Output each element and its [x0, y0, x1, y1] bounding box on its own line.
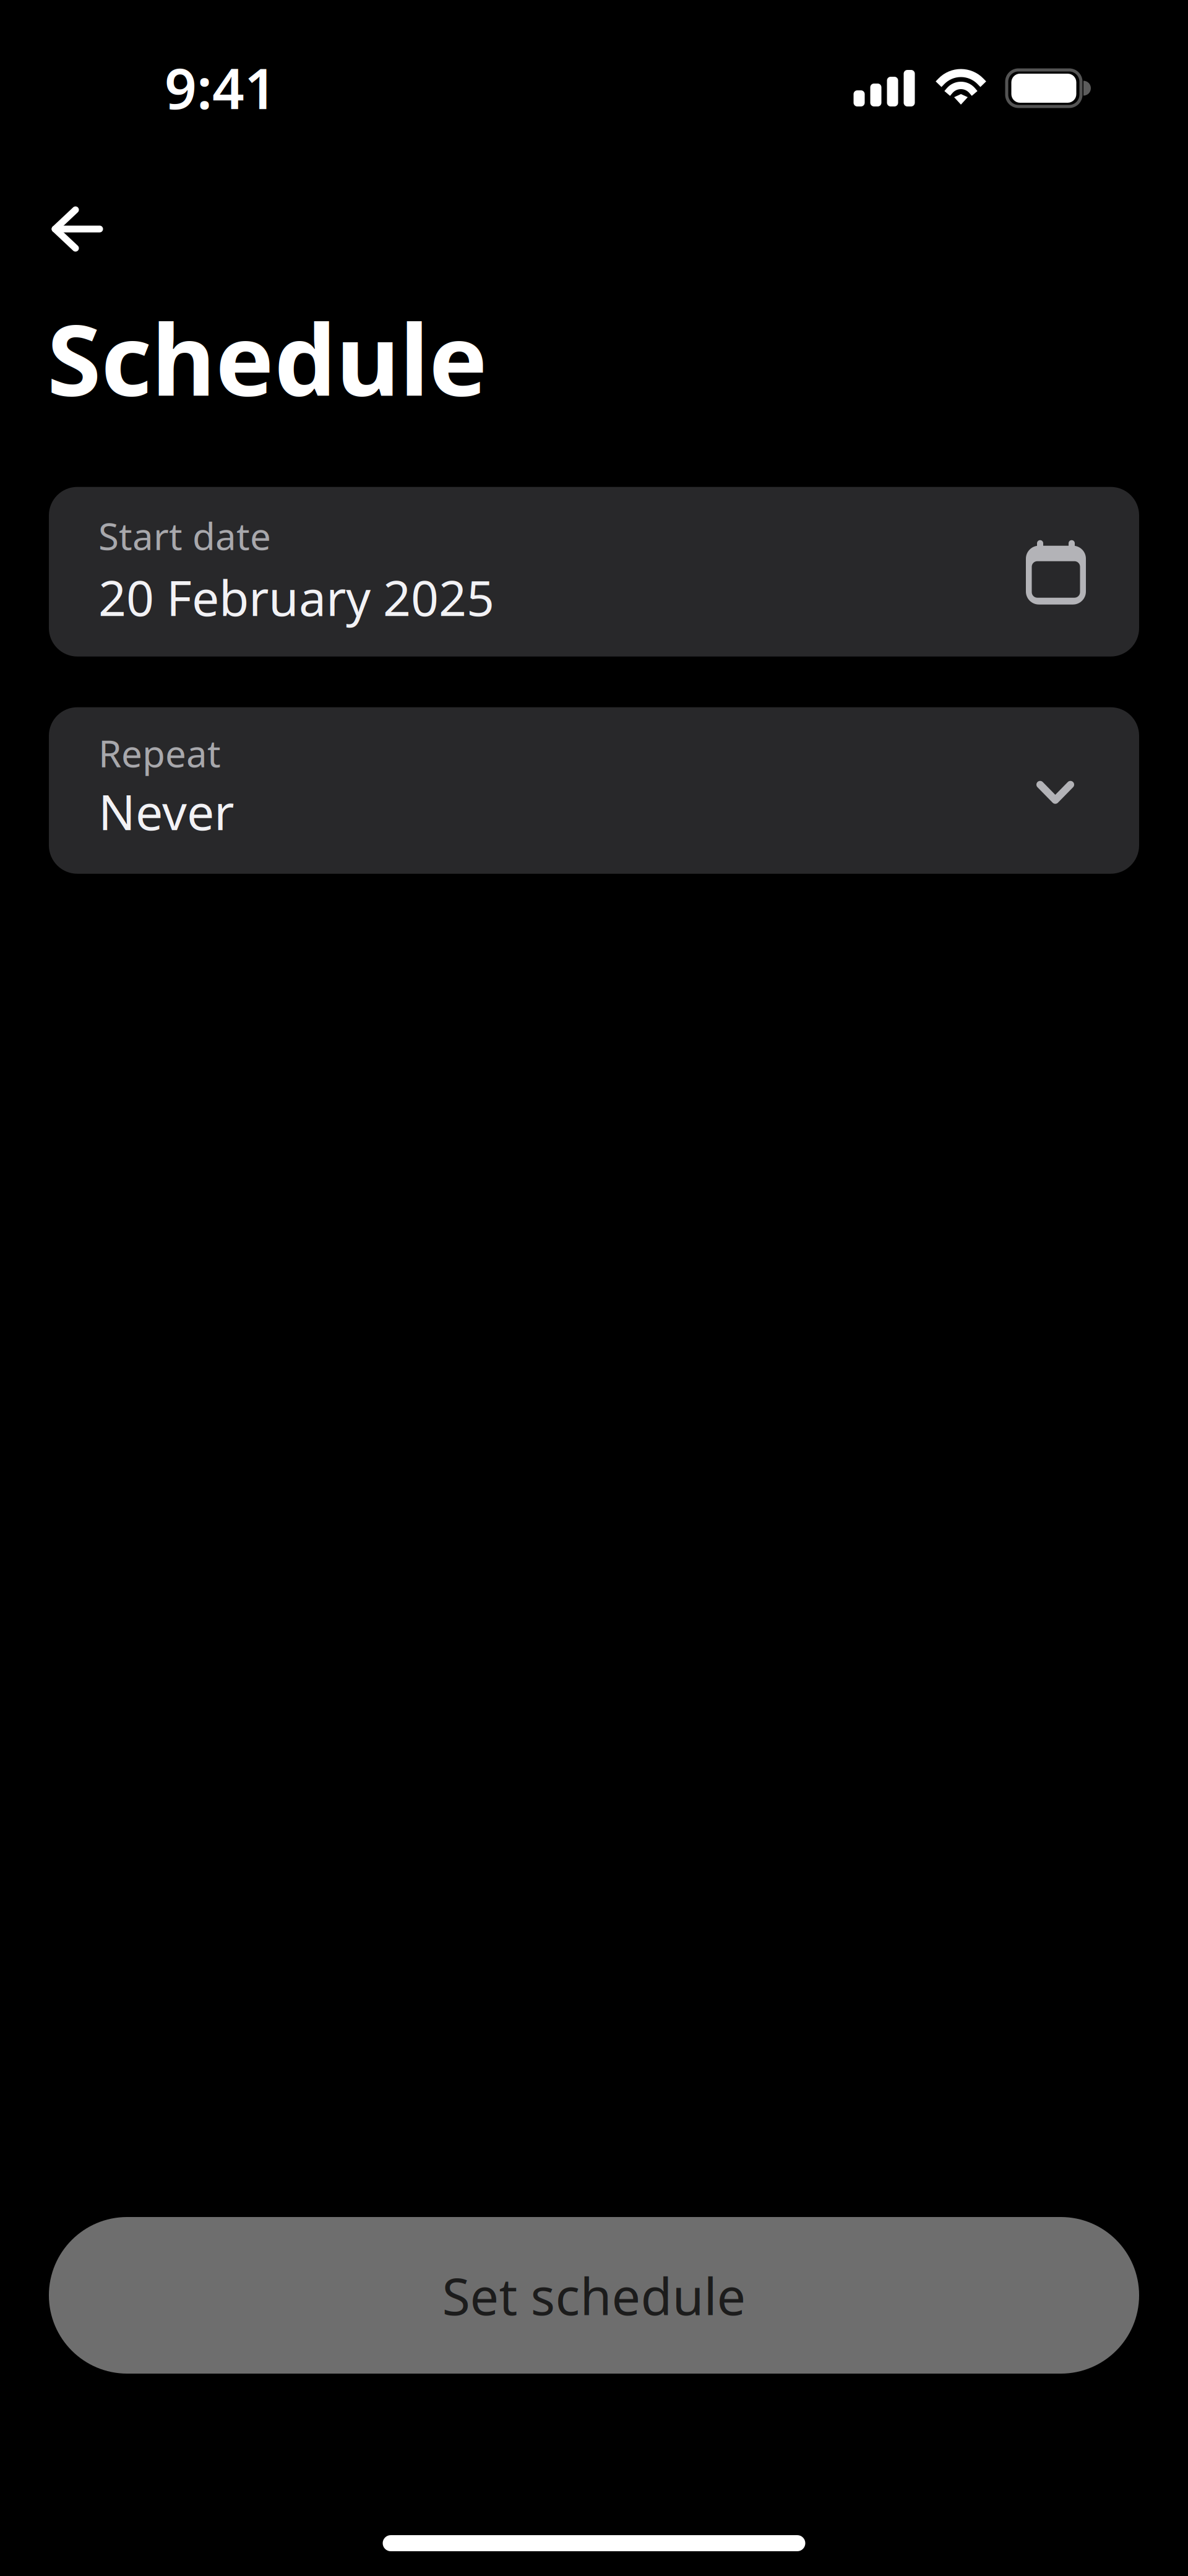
staticText: 20 February 2025: [98, 565, 494, 629]
staticText: Set schedule: [442, 2261, 746, 2329]
button[interactable]: Set schedule: [49, 2217, 1139, 2374]
staticText: Never: [98, 779, 234, 844]
staticText: 9:41: [165, 50, 277, 125]
staticText: Schedule: [47, 292, 488, 423]
button[interactable]: Repeat: [49, 707, 1139, 874]
staticText: Start date: [98, 511, 271, 560]
button[interactable]: Back: [0, 188, 132, 270]
button[interactable]: Start date: [49, 487, 1139, 657]
staticText: Repeat: [98, 728, 221, 778]
